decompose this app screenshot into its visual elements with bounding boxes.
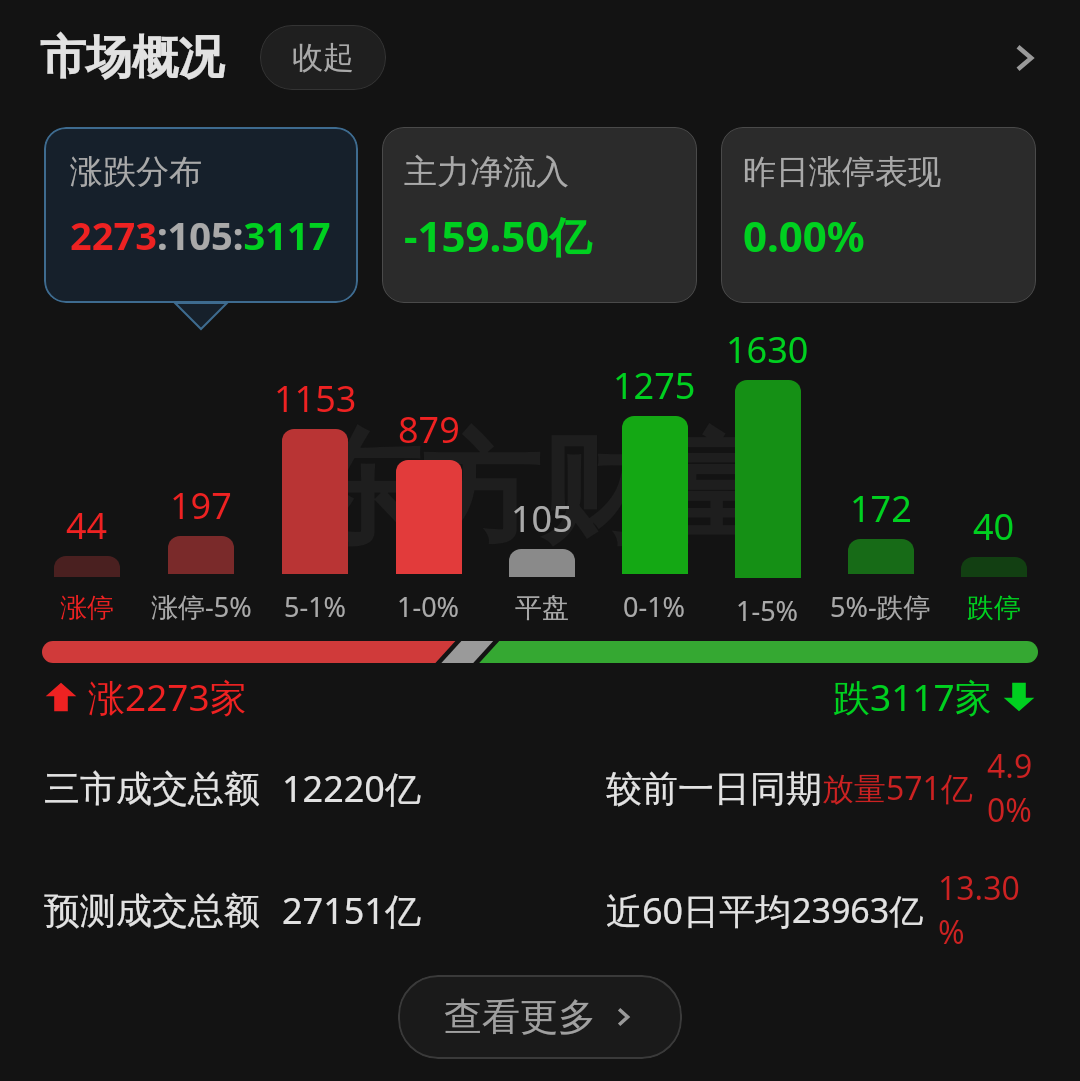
staticText: 涨跌分布 [70,151,202,193]
staticText: 879 [398,405,460,454]
staticText: 40 [973,502,1015,551]
staticText: 跌停 [967,591,1021,625]
staticText: 主力净流入 [404,151,569,193]
staticText: 预测成交总额 [44,888,260,933]
staticText: 跌3117家 [833,671,992,722]
staticText: 1153 [274,374,357,423]
staticText: 涨停-5% [151,588,252,625]
staticText: -159.50亿 [404,207,592,264]
staticText: 1-0% [397,588,460,625]
staticText: 5-1% [284,588,347,625]
staticText: 12220亿 [282,764,421,813]
staticText: 涨2273家 [88,671,247,722]
staticText: 105 [511,494,573,543]
staticText: 0-1% [623,588,686,625]
button[interactable]: More [992,26,1056,90]
staticText: 27151亿 [282,886,421,935]
staticText: 三市成交总额 [44,766,260,811]
staticText: 172 [850,484,912,533]
button[interactable]: 昨日涨停表现 [721,127,1036,303]
button[interactable]: 涨跌分布 [44,127,358,303]
staticText: 涨停 [60,591,114,625]
staticText: 1630 [726,325,809,374]
staticText: 197 [170,481,232,530]
staticText: 1275 [613,361,696,410]
staticText: 市场概况 [40,29,224,87]
staticText: 平盘 [515,591,569,625]
button[interactable]: 查看更多 [398,975,682,1059]
staticText: 较前一日同期 [606,766,822,811]
button[interactable]: 收起 [260,25,386,90]
staticText: 查看更多 [444,993,596,1041]
staticText: 13.30% [938,866,1036,954]
staticText: 23963亿 [792,887,924,933]
button[interactable]: 主力净流入 [382,127,697,303]
staticText: 放量571亿 [822,766,973,810]
staticText: 收起 [292,38,354,77]
staticText: 1-5% [736,592,799,625]
staticText: 0.00% [743,207,865,264]
staticText: 昨日涨停表现 [743,151,941,193]
staticText: 2273:105:3117 [70,209,331,261]
staticText: 东方财富 [300,415,780,566]
staticText: 近60日平均 [606,886,792,935]
staticText: 4.90% [987,744,1036,832]
staticText: 44 [66,501,108,550]
staticText: 5%-跌停 [830,588,931,625]
